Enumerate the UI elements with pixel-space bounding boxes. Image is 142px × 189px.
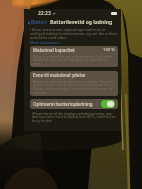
staticText: Dette er et maal for batterikapaciteten … [33, 54, 115, 66]
staticText: iPhone laerer af din daglige opladningsr… [32, 111, 116, 123]
staticText: 22:23 [38, 10, 51, 17]
staticText: Batteriets maksimale ydeevne er normal. … [33, 79, 115, 95]
staticText: Evne til maksimal ydelse [33, 72, 86, 78]
button[interactable]: Evne til maksimal ydelse [30, 71, 118, 96]
staticText: i Bliver med andre oplysninger batterier… [30, 27, 118, 40]
button[interactable]: Maksimal kapacitet [30, 46, 118, 67]
button[interactable]: Batteri [27, 19, 47, 26]
button[interactable]: Optimeret batteriopladning [30, 99, 118, 109]
staticText: Batterilevetid og ladning [50, 19, 113, 26]
staticText: Optimeret batteriopladning [33, 101, 93, 107]
staticText: Maksimal kapacitet [33, 47, 75, 53]
button[interactable]: Optimeret batteriopladning [101, 100, 115, 108]
staticText: 100 % [103, 47, 115, 53]
staticText: Batteri [31, 19, 47, 26]
button[interactable]: Mere om batteri... [30, 40, 62, 45]
